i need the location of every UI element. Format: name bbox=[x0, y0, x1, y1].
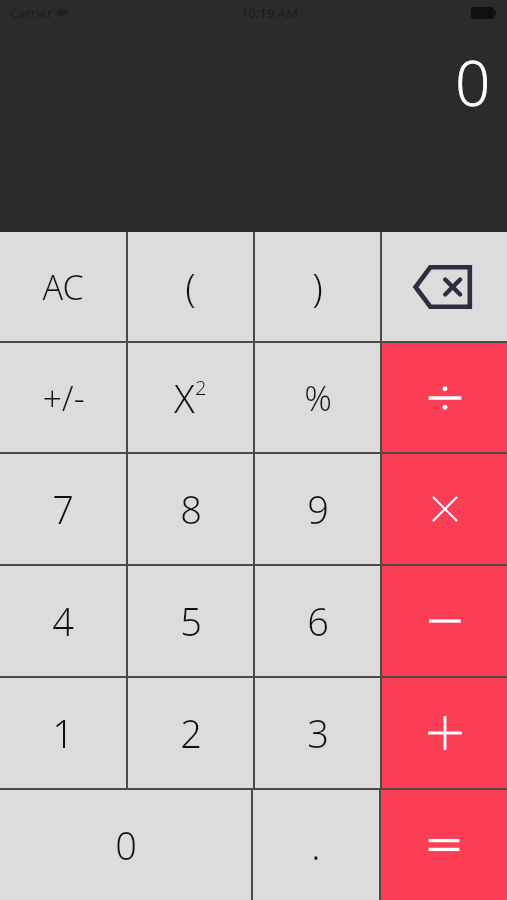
button[interactable]: 8 bbox=[128, 454, 253, 564]
button[interactable]: 3 bbox=[255, 678, 380, 788]
button[interactable]: 1 bbox=[0, 678, 126, 788]
staticText: Carrier bbox=[10, 4, 53, 22]
button[interactable]: Plus bbox=[382, 678, 507, 788]
staticText: 0 bbox=[115, 819, 137, 871]
staticText: X bbox=[174, 372, 195, 424]
button[interactable]: . bbox=[253, 790, 379, 900]
staticText: 10:19 AM bbox=[241, 4, 299, 22]
button[interactable]: Equals bbox=[381, 790, 507, 900]
staticText: ( bbox=[185, 261, 196, 313]
button[interactable]: Multiply bbox=[382, 454, 507, 564]
button[interactable]: +/- bbox=[0, 343, 126, 452]
staticText: 8 bbox=[180, 483, 202, 535]
staticText: . bbox=[311, 819, 321, 871]
staticText: 2 bbox=[195, 374, 207, 401]
button[interactable]: 5 bbox=[128, 566, 253, 676]
button[interactable]: Divide bbox=[382, 343, 507, 452]
staticText: 5 bbox=[180, 595, 202, 647]
staticText: ) bbox=[312, 261, 323, 313]
button[interactable]: 9 bbox=[255, 454, 380, 564]
staticText: 7 bbox=[52, 483, 74, 535]
button[interactable]: Backspace bbox=[382, 232, 507, 341]
staticText: 3 bbox=[307, 707, 329, 759]
button[interactable]: X bbox=[128, 343, 253, 452]
staticText: +/- bbox=[42, 375, 85, 421]
button[interactable]: ( bbox=[128, 232, 253, 341]
staticText: % bbox=[304, 375, 332, 421]
button[interactable]: % bbox=[255, 343, 380, 452]
button[interactable]: 0 bbox=[0, 790, 251, 900]
staticText: 0 bbox=[455, 40, 491, 124]
button[interactable]: 4 bbox=[0, 566, 126, 676]
staticText: 9 bbox=[307, 483, 329, 535]
staticText: 4 bbox=[52, 595, 74, 647]
staticText: 2 bbox=[180, 707, 202, 759]
button[interactable]: Minus bbox=[382, 566, 507, 676]
button[interactable]: 6 bbox=[255, 566, 380, 676]
button[interactable]: AC bbox=[0, 232, 126, 341]
button[interactable]: 7 bbox=[0, 454, 126, 564]
button[interactable]: ) bbox=[255, 232, 380, 341]
staticText: 1 bbox=[52, 707, 74, 759]
button[interactable]: 2 bbox=[128, 678, 253, 788]
staticText: AC bbox=[42, 264, 84, 310]
staticText: 6 bbox=[307, 595, 329, 647]
